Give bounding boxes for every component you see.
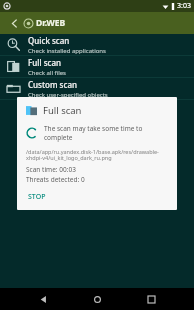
button[interactable]: Custom scan: [0, 78, 194, 99]
staticText: Quick scan: [28, 35, 70, 46]
button[interactable]: Back: [32, 288, 54, 310]
staticText: STOP: [28, 192, 46, 202]
staticText: The scan may take some time to complete: [44, 124, 171, 142]
button[interactable]: Full scan: [0, 56, 194, 77]
button[interactable]: STOP: [26, 191, 48, 203]
button[interactable]: Home: [86, 288, 108, 310]
staticText: Dr.WEB: [36, 17, 66, 29]
staticText: Check user-specified objects: [28, 91, 108, 99]
staticText: Scan time: 00:03: [26, 165, 76, 174]
staticText: 3:03: [177, 1, 191, 11]
staticText: /data/app/ru.yandex.disk-1/base.apk/res/…: [26, 148, 171, 162]
staticText: Full scan: [28, 57, 62, 68]
staticText: Custom scan: [28, 79, 77, 90]
staticText: Threats detected: 0: [26, 175, 85, 184]
button[interactable]: Recent apps: [140, 288, 162, 310]
button[interactable]: Quick scan: [0, 34, 194, 55]
staticText: Full scan: [43, 104, 82, 117]
staticText: Check installed applications: [28, 47, 106, 55]
staticText: Check all files: [28, 69, 66, 77]
button[interactable]: Back: [6, 15, 22, 31]
